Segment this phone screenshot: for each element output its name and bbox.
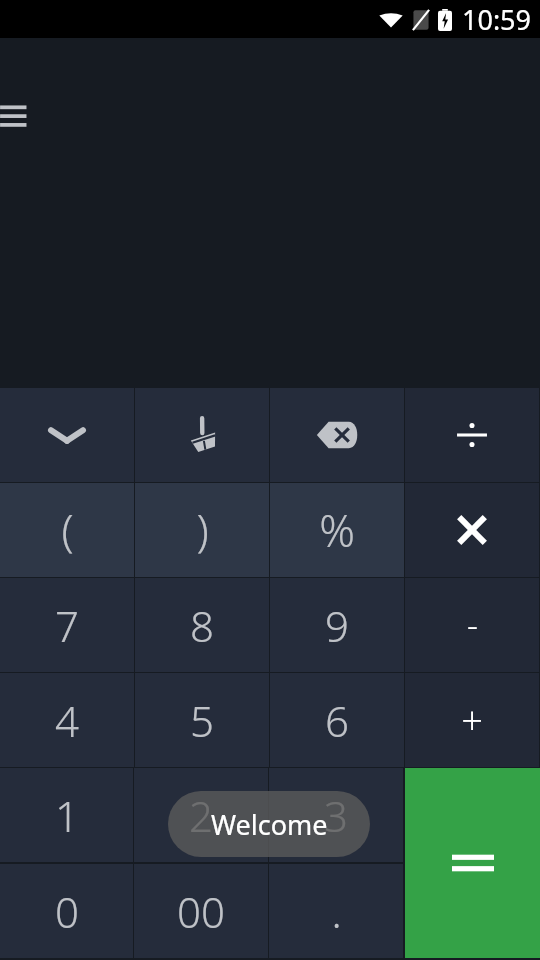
- button[interactable]: 3: [269, 768, 403, 862]
- staticText: 00: [177, 883, 225, 940]
- button[interactable]: Collapse: [0, 388, 134, 482]
- button[interactable]: ): [135, 483, 269, 577]
- button[interactable]: 0: [0, 864, 133, 958]
- button[interactable]: 2: [134, 768, 268, 862]
- staticText: 2: [189, 787, 213, 844]
- staticText: ): [196, 500, 209, 560]
- staticText: 5: [190, 692, 214, 749]
- button[interactable]: Menu: [0, 94, 30, 138]
- staticText: 10:59: [462, 1, 532, 38]
- button[interactable]: 7: [0, 578, 134, 672]
- button[interactable]: Equals: [405, 768, 540, 958]
- button[interactable]: Backspace: [270, 388, 404, 482]
- staticText: 1: [55, 787, 79, 844]
- staticText: .: [331, 883, 342, 940]
- button[interactable]: 4: [0, 673, 134, 767]
- button[interactable]: 5: [135, 673, 269, 767]
- button[interactable]: Divide: [405, 388, 539, 482]
- button[interactable]: +: [405, 673, 539, 767]
- staticText: (: [61, 500, 74, 560]
- button[interactable]: 8: [135, 578, 269, 672]
- staticText: 6: [325, 692, 349, 749]
- button[interactable]: 00: [134, 864, 268, 958]
- staticText: 0: [55, 883, 79, 940]
- button[interactable]: (: [0, 483, 134, 577]
- button[interactable]: .: [269, 864, 403, 958]
- button[interactable]: 9: [270, 578, 404, 672]
- staticText: -: [467, 602, 478, 648]
- button[interactable]: 6: [270, 673, 404, 767]
- staticText: 9: [325, 597, 349, 654]
- staticText: 7: [55, 597, 79, 654]
- button[interactable]: -: [405, 578, 539, 672]
- staticText: +: [461, 694, 483, 746]
- staticText: 3: [324, 787, 348, 844]
- staticText: 4: [55, 692, 79, 749]
- staticText: %: [319, 500, 355, 560]
- button[interactable]: Clear all: [135, 388, 269, 482]
- button[interactable]: Multiply: [405, 483, 539, 577]
- staticText: Welcome: [211, 806, 328, 843]
- button[interactable]: %: [270, 483, 404, 577]
- staticText: 8: [190, 597, 214, 654]
- button[interactable]: 1: [0, 768, 133, 862]
